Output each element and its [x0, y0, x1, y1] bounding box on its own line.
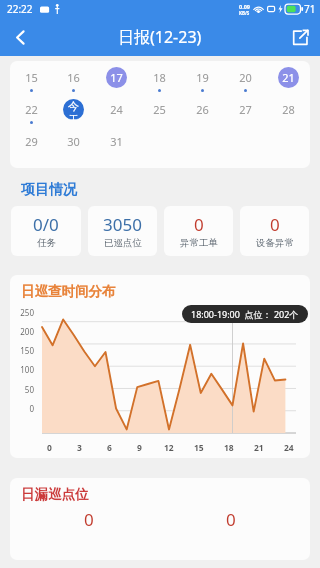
staticText: 0 [194, 213, 204, 236]
staticText: 27 [239, 102, 252, 117]
staticText: 6 [107, 442, 112, 454]
staticText: 日巡查时间分布 [21, 283, 116, 300]
button[interactable]: 24 [95, 99, 138, 126]
staticText: 24 [110, 102, 123, 117]
button[interactable]: 0 [240, 206, 309, 256]
staticText: 任务 [37, 237, 56, 249]
staticText: 21 [282, 70, 295, 85]
staticText: 项目情况 [21, 181, 77, 199]
staticText: 3 [77, 442, 82, 454]
staticText: 0 [226, 508, 236, 531]
staticText: 0 [47, 442, 52, 454]
staticText: 200 [10, 326, 34, 337]
staticText: 31 [110, 134, 123, 149]
staticText: 设备异常 [256, 237, 294, 249]
staticText: 15 [194, 442, 204, 454]
button[interactable]: Back [0, 18, 40, 56]
button[interactable]: 27 [224, 99, 267, 126]
staticText: 今天 [63, 99, 84, 120]
staticText: 0.09 [239, 3, 250, 10]
staticText: 29 [25, 134, 38, 149]
staticText: 15 [25, 70, 38, 85]
staticText: 24 [284, 442, 294, 454]
staticText: 0 [84, 508, 94, 531]
button[interactable]: 30 [52, 131, 95, 158]
staticText: KB/S [239, 10, 250, 16]
staticText: 12 [164, 442, 174, 454]
staticText: 25 [153, 102, 166, 117]
staticText: 18:00-19:00 点位： 202个 [191, 308, 299, 320]
staticText: 250 [10, 307, 34, 318]
staticText: 0 [10, 403, 34, 414]
button[interactable]: 19 [181, 67, 224, 94]
staticText: 50 [10, 384, 34, 395]
staticText: 已巡点位 [104, 237, 142, 249]
staticText: 20 [239, 70, 252, 85]
button[interactable]: 3050 [88, 206, 157, 256]
staticText: 22:22 [7, 2, 33, 16]
button[interactable]: 0 [164, 206, 233, 256]
button[interactable]: 29 [10, 131, 52, 158]
staticText: 16 [67, 70, 80, 85]
staticText: 21 [254, 442, 264, 454]
staticText: 0 [270, 213, 280, 236]
button[interactable]: 今天 [52, 99, 95, 126]
button[interactable]: 0/0 [11, 206, 81, 256]
button[interactable]: 28 [267, 99, 310, 126]
staticText: 19 [196, 70, 209, 85]
staticText: 17 [110, 70, 123, 85]
staticText: 18 [153, 70, 166, 85]
button[interactable]: 17 [95, 67, 138, 94]
staticText: 日报(12-23) [118, 26, 202, 48]
staticText: 30 [67, 134, 80, 149]
staticText: 26 [196, 102, 209, 117]
staticText: 日漏巡点位 [21, 486, 89, 503]
button[interactable]: 31 [95, 131, 138, 158]
staticText: 22 [25, 102, 38, 117]
button[interactable]: 18 [138, 67, 181, 94]
staticText: 150 [10, 345, 34, 356]
button[interactable]: 15 [10, 67, 52, 94]
staticText: 28 [282, 102, 295, 117]
staticText: 3050 [103, 213, 142, 236]
button[interactable]: 25 [138, 99, 181, 126]
button[interactable]: 26 [181, 99, 224, 126]
staticText: 异常工单 [180, 237, 218, 249]
button[interactable]: 22 [10, 99, 52, 126]
button[interactable]: 16 [52, 67, 95, 94]
staticText: 18 [224, 442, 234, 454]
button[interactable]: 21 [267, 67, 310, 94]
button[interactable]: 20 [224, 67, 267, 94]
staticText: 0/0 [33, 213, 59, 236]
button[interactable]: Share [280, 18, 320, 56]
staticText: 9 [137, 442, 142, 454]
staticText: 100 [10, 364, 34, 375]
staticText: 71 [304, 2, 316, 16]
